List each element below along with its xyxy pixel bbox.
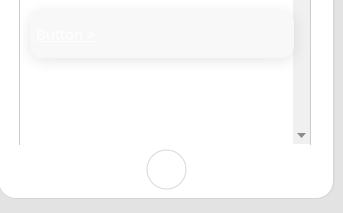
button[interactable]: Scroll down — [293, 127, 310, 144]
